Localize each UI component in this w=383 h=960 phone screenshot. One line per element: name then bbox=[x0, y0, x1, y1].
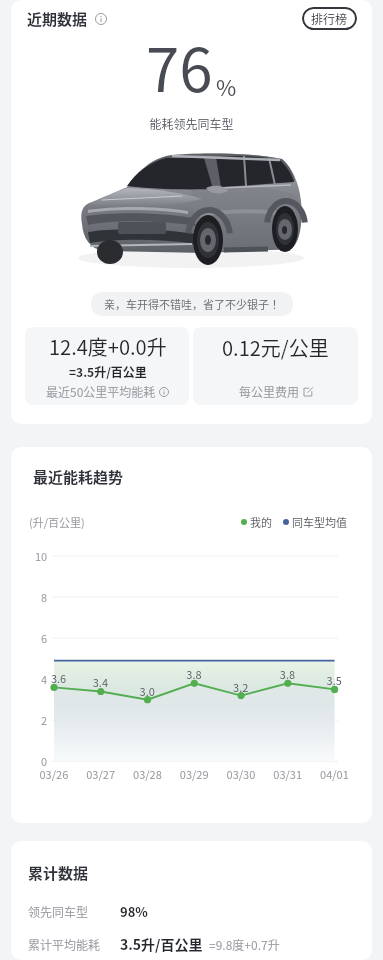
staticText: 累计平均能耗 bbox=[28, 936, 101, 953]
staticText: 领先同车型 bbox=[28, 903, 89, 920]
staticText: 近期数据 bbox=[27, 8, 88, 30]
other: Edit bbox=[303, 387, 313, 397]
staticText: 98% bbox=[120, 902, 148, 921]
staticText: 亲，车开得不错哇，省了不少银子！ bbox=[104, 296, 280, 312]
staticText: 76 bbox=[146, 22, 213, 109]
staticText: =9.8度+0.7升 bbox=[209, 936, 280, 953]
staticText: (升/百公里) bbox=[29, 514, 85, 530]
staticText: 3.5升/百公里 bbox=[120, 934, 203, 954]
staticText: 最近50公里平均能耗 bbox=[46, 383, 156, 400]
staticText: 排行榜 bbox=[311, 10, 348, 27]
staticText: 每公里费用 bbox=[239, 383, 300, 400]
button[interactable]: 亲，车开得不错哇，省了不少银子！ bbox=[91, 292, 293, 316]
button[interactable]: 同车型均值 bbox=[283, 514, 347, 530]
staticText: 能耗领先同车型 bbox=[11, 115, 372, 132]
staticText: % bbox=[216, 70, 237, 102]
button[interactable]: 排行榜 bbox=[302, 7, 357, 30]
staticText: =3.5升/百公里 bbox=[69, 363, 147, 380]
staticText: 同车型均值 bbox=[292, 514, 347, 530]
staticText: 12.4度+0.0升 bbox=[49, 332, 167, 361]
staticText: 我的 bbox=[250, 514, 272, 530]
button[interactable]: 0.12元/公里 bbox=[193, 327, 358, 405]
staticText: 累计数据 bbox=[28, 862, 89, 884]
button[interactable]: 我的 bbox=[241, 514, 272, 530]
button[interactable]: 12.4度+0.0升 bbox=[25, 327, 189, 405]
staticText: 最近能耗趋势 bbox=[33, 466, 124, 488]
other: Info bbox=[159, 387, 169, 397]
staticText: 0.12元/公里 bbox=[222, 333, 329, 362]
other: Info bbox=[95, 13, 107, 25]
